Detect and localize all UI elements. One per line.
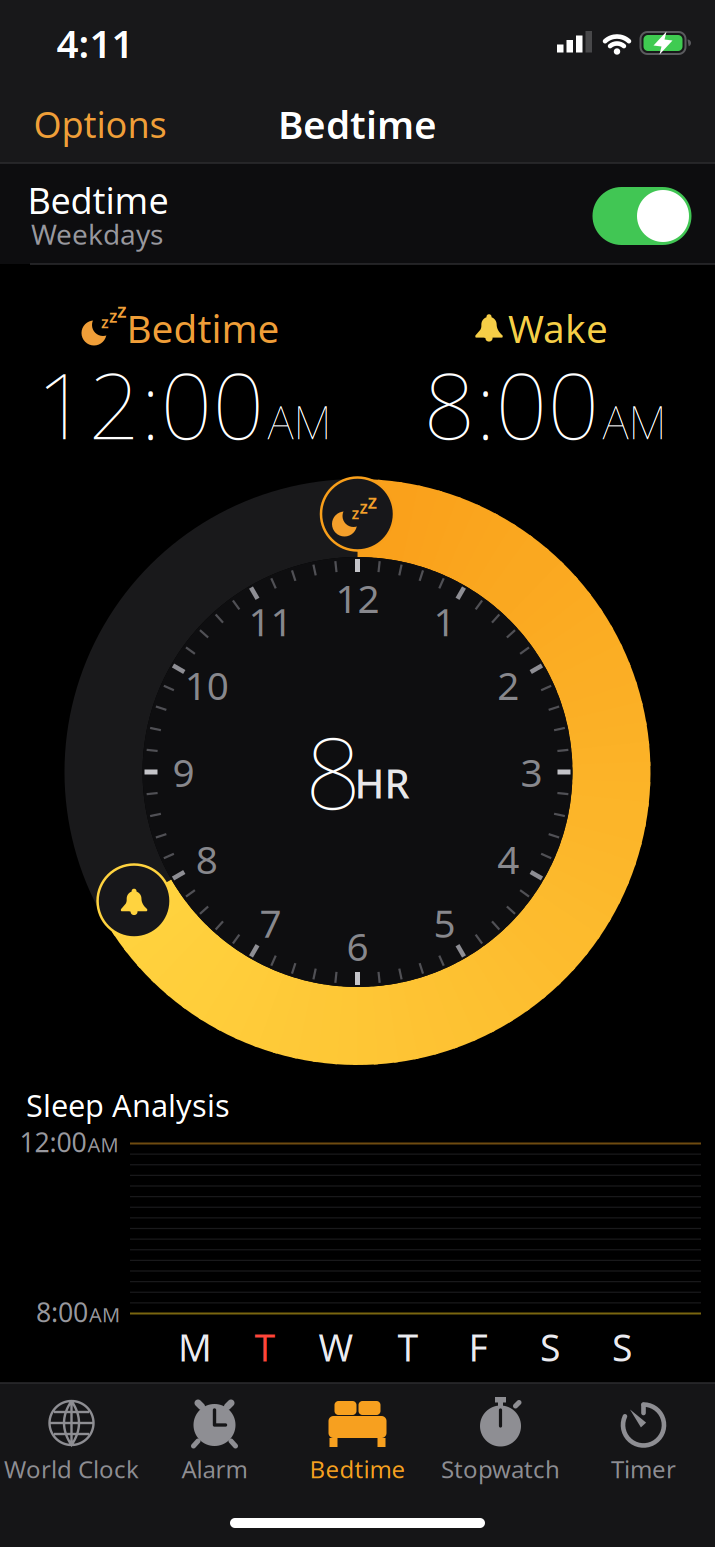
staticText: Options xyxy=(33,100,166,148)
staticText: AM xyxy=(602,391,666,452)
staticText: S xyxy=(540,1322,560,1372)
staticText: F xyxy=(468,1322,487,1372)
staticText: Sleep Analysis xyxy=(26,1085,230,1125)
staticText: 8 xyxy=(196,833,218,885)
staticText: T xyxy=(254,1322,275,1372)
staticText: 12:00 xyxy=(36,344,264,464)
staticText: z xyxy=(109,304,117,327)
staticText: 6 xyxy=(346,920,368,972)
staticText: Stopwatch xyxy=(441,1453,560,1485)
staticText: 1 xyxy=(433,596,455,647)
staticText: 4:11 xyxy=(56,17,133,69)
button[interactable]: Timer xyxy=(567,1383,715,1493)
staticText: W xyxy=(318,1322,353,1372)
button[interactable] xyxy=(592,187,691,245)
staticText: M xyxy=(178,1322,212,1372)
staticText: 4 xyxy=(497,833,519,885)
button[interactable] xyxy=(96,862,173,939)
staticText: 5 xyxy=(433,897,455,948)
staticText: 12 xyxy=(335,572,379,624)
staticText: T xyxy=(397,1322,418,1372)
staticText: Alarm xyxy=(181,1453,247,1485)
button[interactable]: Stopwatch xyxy=(424,1383,576,1493)
staticText: 10 xyxy=(185,659,229,711)
staticText: 8:00 xyxy=(423,344,599,464)
staticText: 8 xyxy=(305,705,361,836)
staticText: z xyxy=(367,488,377,514)
staticText: Bedtime xyxy=(278,98,437,150)
staticText: S xyxy=(612,1322,632,1372)
button[interactable]: Options xyxy=(10,94,190,154)
button[interactable]: Alarm xyxy=(138,1383,290,1493)
staticText: AM xyxy=(267,391,331,452)
button[interactable]: z xyxy=(319,475,396,552)
staticText: Weekdays xyxy=(31,215,163,253)
staticText: z xyxy=(101,311,109,333)
staticText: Wake xyxy=(508,302,608,354)
button[interactable]: Bedtime xyxy=(281,1383,433,1493)
staticText: 11 xyxy=(248,596,292,647)
staticText: z xyxy=(359,495,367,518)
staticText: Bedtime xyxy=(126,302,279,354)
staticText: z xyxy=(351,502,359,524)
staticText: 2 xyxy=(497,659,519,711)
staticText: Timer xyxy=(611,1453,676,1485)
staticText: AM xyxy=(87,1131,118,1158)
staticText: 3 xyxy=(520,746,542,798)
staticText: 7 xyxy=(259,897,281,948)
staticText: World Clock xyxy=(4,1453,139,1485)
staticText: z xyxy=(117,297,127,323)
staticText: AM xyxy=(89,1301,120,1328)
staticText: Bedtime xyxy=(309,1453,405,1485)
staticText: HR xyxy=(354,756,409,809)
staticText: 9 xyxy=(172,746,194,798)
button[interactable]: World Clock xyxy=(0,1383,147,1493)
staticText: 8:00 xyxy=(36,1294,88,1330)
staticText: 12:00 xyxy=(19,1124,86,1160)
staticText: Bedtime xyxy=(27,176,168,224)
